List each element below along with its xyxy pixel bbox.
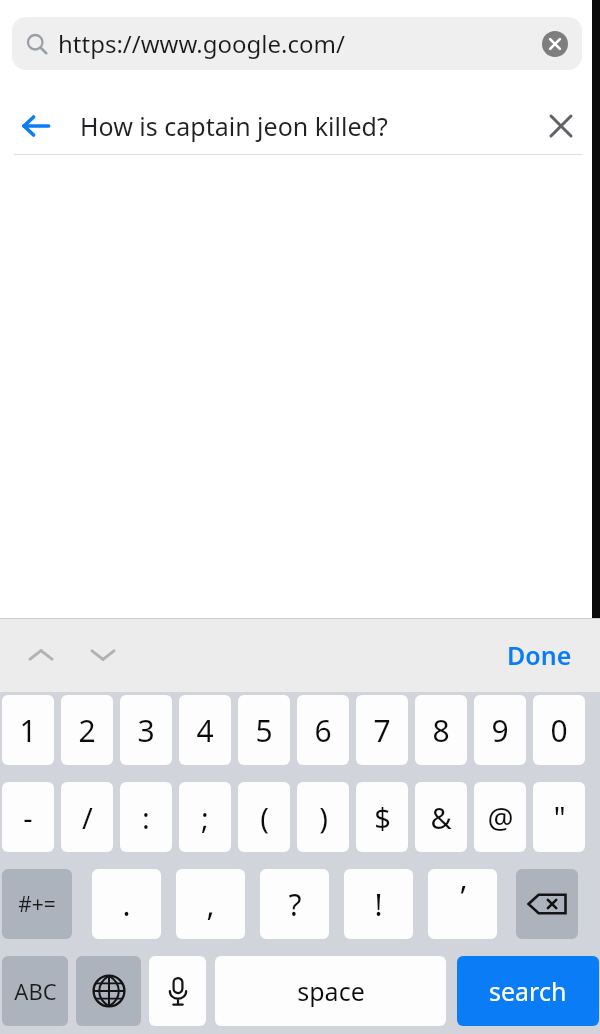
staticText: 5: [255, 710, 273, 751]
staticText: -: [23, 798, 33, 837]
staticText: (: [260, 798, 269, 837]
button[interactable]: search: [457, 956, 599, 1026]
button[interactable]: Previous field: [18, 632, 64, 678]
staticText: https://www.google.com/: [58, 27, 345, 60]
staticText: ?: [288, 884, 302, 925]
staticText: ,: [206, 884, 215, 925]
staticText: How is captain jeon killed?: [80, 109, 388, 143]
button[interactable]: Close find bar: [540, 105, 582, 147]
staticText: ): [319, 798, 328, 837]
staticText: &: [430, 798, 452, 837]
button[interactable]: ?: [260, 869, 329, 939]
button[interactable]: ": [533, 782, 585, 852]
button[interactable]: space: [215, 956, 446, 1026]
button[interactable]: -: [2, 782, 54, 852]
staticText: #+=: [18, 890, 56, 919]
button[interactable]: ;: [179, 782, 231, 852]
button[interactable]: ,: [176, 869, 245, 939]
button[interactable]: Done: [501, 632, 578, 678]
staticText: 0: [550, 710, 568, 751]
button[interactable]: $: [356, 782, 408, 852]
button[interactable]: Next field: [80, 632, 126, 678]
button[interactable]: 4: [179, 695, 231, 765]
button[interactable]: ): [297, 782, 349, 852]
staticText: 6: [314, 710, 332, 751]
button[interactable]: 7: [356, 695, 408, 765]
button[interactable]: 5: [238, 695, 290, 765]
button[interactable]: .: [92, 869, 161, 939]
button[interactable]: Back: [14, 104, 58, 148]
staticText: ABC: [14, 976, 57, 1006]
button[interactable]: (: [238, 782, 290, 852]
staticText: Done: [507, 638, 572, 672]
staticText: ;: [201, 798, 209, 837]
button[interactable]: 6: [297, 695, 349, 765]
button[interactable]: 9: [474, 695, 526, 765]
button[interactable]: :: [120, 782, 172, 852]
staticText: 9: [491, 710, 509, 751]
staticText: 8: [432, 710, 450, 751]
staticText: !: [374, 884, 383, 925]
button[interactable]: Change keyboard language: [76, 956, 141, 1026]
button[interactable]: ABC: [2, 956, 68, 1026]
button[interactable]: ’: [428, 869, 497, 939]
staticText: ’: [460, 876, 466, 917]
staticText: search: [489, 974, 567, 1008]
staticText: 2: [78, 710, 96, 751]
staticText: ": [553, 797, 566, 838]
button[interactable]: &: [415, 782, 467, 852]
staticText: 1: [19, 710, 37, 751]
staticText: 4: [196, 710, 214, 751]
staticText: $: [374, 798, 391, 837]
button[interactable]: #+=: [2, 869, 72, 939]
staticText: 7: [373, 710, 391, 751]
button[interactable]: 1: [2, 695, 54, 765]
staticText: :: [142, 798, 150, 837]
button[interactable]: 2: [61, 695, 113, 765]
staticText: 3: [137, 710, 155, 751]
button[interactable]: Clear address: [540, 29, 570, 59]
staticText: @: [487, 798, 514, 837]
button[interactable]: 8: [415, 695, 467, 765]
staticText: .: [122, 884, 131, 925]
button[interactable]: /: [61, 782, 113, 852]
button[interactable]: Voice input: [149, 956, 206, 1026]
button[interactable]: 0: [533, 695, 585, 765]
button[interactable]: 3: [120, 695, 172, 765]
button[interactable]: Backspace: [516, 869, 578, 939]
button[interactable]: @: [474, 782, 526, 852]
staticText: /: [82, 798, 93, 837]
button[interactable]: https://www.google.com/: [12, 17, 582, 70]
staticText: space: [297, 974, 365, 1008]
button[interactable]: !: [344, 869, 413, 939]
